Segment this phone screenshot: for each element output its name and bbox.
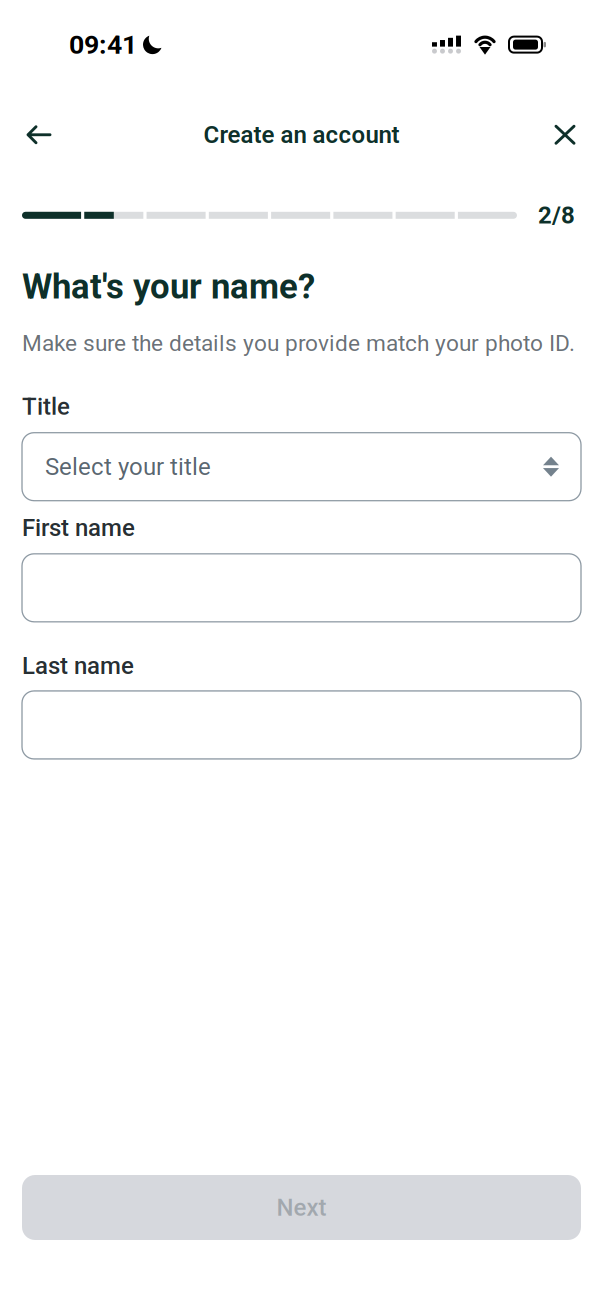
staticText: What's your name?	[22, 266, 315, 307]
button[interactable]: Back	[12, 108, 64, 162]
staticText: First name	[22, 514, 135, 542]
button[interactable]	[22, 554, 581, 622]
button[interactable]: Close	[542, 107, 591, 162]
staticText: Create an account	[203, 121, 399, 149]
staticText: Select your title	[45, 453, 211, 481]
button[interactable]: Next	[22, 1175, 581, 1240]
staticText: Title	[22, 393, 70, 421]
button[interactable]: Select your title	[22, 433, 581, 501]
staticText: Next	[276, 1193, 326, 1221]
staticText: Make sure the details you provide match …	[22, 330, 575, 357]
staticText: Last name	[22, 652, 134, 680]
staticText: 2/8	[538, 201, 575, 229]
button[interactable]	[22, 691, 581, 759]
staticText: 09:41	[69, 29, 137, 60]
